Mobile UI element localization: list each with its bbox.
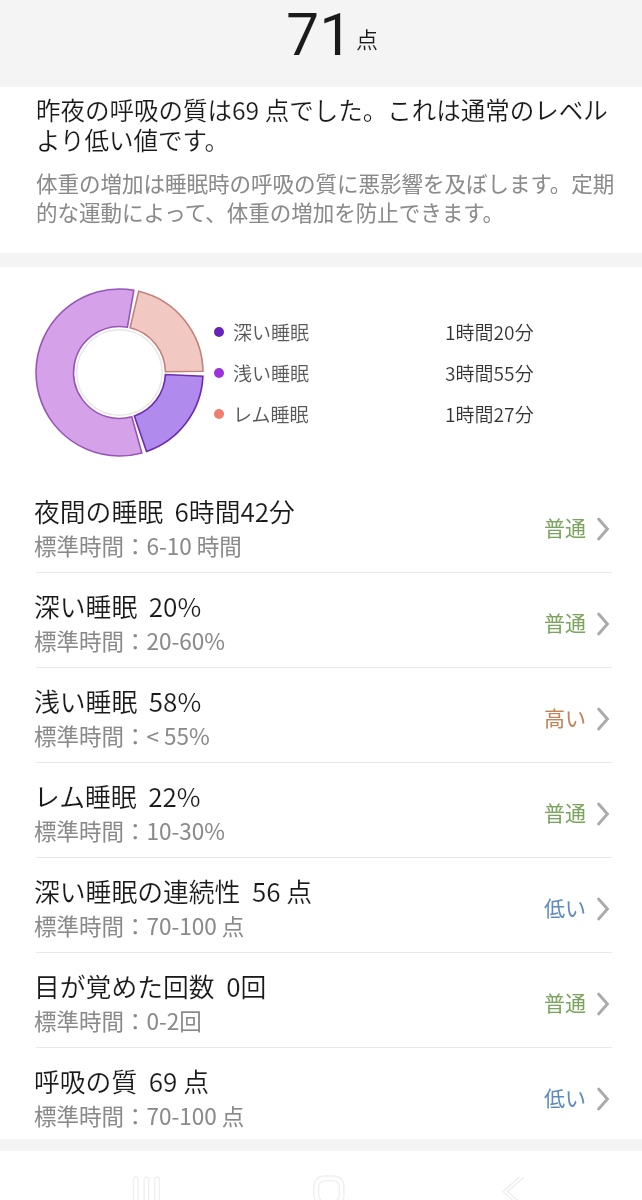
staticText: 普通	[544, 512, 586, 542]
button[interactable]: 目が覚めた回数 0回	[0, 953, 642, 1048]
staticText: 深い睡眠	[233, 318, 310, 346]
button[interactable]: レム睡眠 22%	[0, 763, 642, 858]
staticText: レム睡眠 22%	[34, 777, 201, 814]
button[interactable]: 夜間の睡眠 6時間42分	[0, 478, 642, 573]
staticText: 標準時間：70-100 点	[34, 909, 245, 942]
staticText: 普通	[544, 607, 586, 637]
button[interactable]: 深い睡眠の連続性 56 点	[0, 858, 642, 953]
staticText: 標準時間：6-10 時間	[34, 529, 242, 562]
staticText: 浅い睡眠 58%	[34, 682, 202, 719]
staticText: 71	[286, 0, 353, 57]
staticText: 浅い睡眠	[233, 359, 310, 387]
staticText: 3時間55分	[445, 359, 534, 387]
staticText: 標準時間：20-60%	[34, 624, 225, 657]
staticText: レム睡眠	[233, 400, 309, 428]
staticText: 深い睡眠の連続性 56 点	[34, 872, 313, 909]
staticText: 体重の増加は睡眠時の呼吸の質に悪影響を及ぼします。定期的な運動によって、体重の増…	[36, 167, 618, 227]
staticText: 標準時間：0-2回	[34, 1004, 202, 1037]
staticText: 低い	[544, 1082, 586, 1112]
staticText: 標準時間：70-100 点	[34, 1099, 245, 1132]
staticText: 高い	[544, 702, 586, 732]
button[interactable]: 呼吸の質 69 点	[0, 1048, 642, 1142]
staticText: 昨夜の呼吸の質は69 点でした。これは通常のレベルより低い値です。	[36, 92, 618, 157]
staticText: 点	[356, 22, 379, 54]
button[interactable]: 浅い睡眠 58%	[0, 668, 642, 763]
staticText: 夜間の睡眠 6時間42分	[34, 492, 295, 529]
staticText: 目が覚めた回数 0回	[34, 967, 267, 1004]
staticText: 普通	[544, 987, 586, 1017]
staticText: 1時間27分	[445, 400, 534, 428]
button[interactable]: 深い睡眠 20%	[0, 573, 642, 668]
staticText: 標準時間：< 55%	[34, 719, 210, 752]
staticText: 深い睡眠 20%	[34, 587, 202, 624]
staticText: 1時間20分	[445, 318, 534, 346]
staticText: 呼吸の質 69 点	[34, 1062, 209, 1099]
staticText: 普通	[544, 797, 586, 827]
staticText: 低い	[544, 892, 586, 922]
staticText: 標準時間：10-30%	[34, 814, 225, 847]
